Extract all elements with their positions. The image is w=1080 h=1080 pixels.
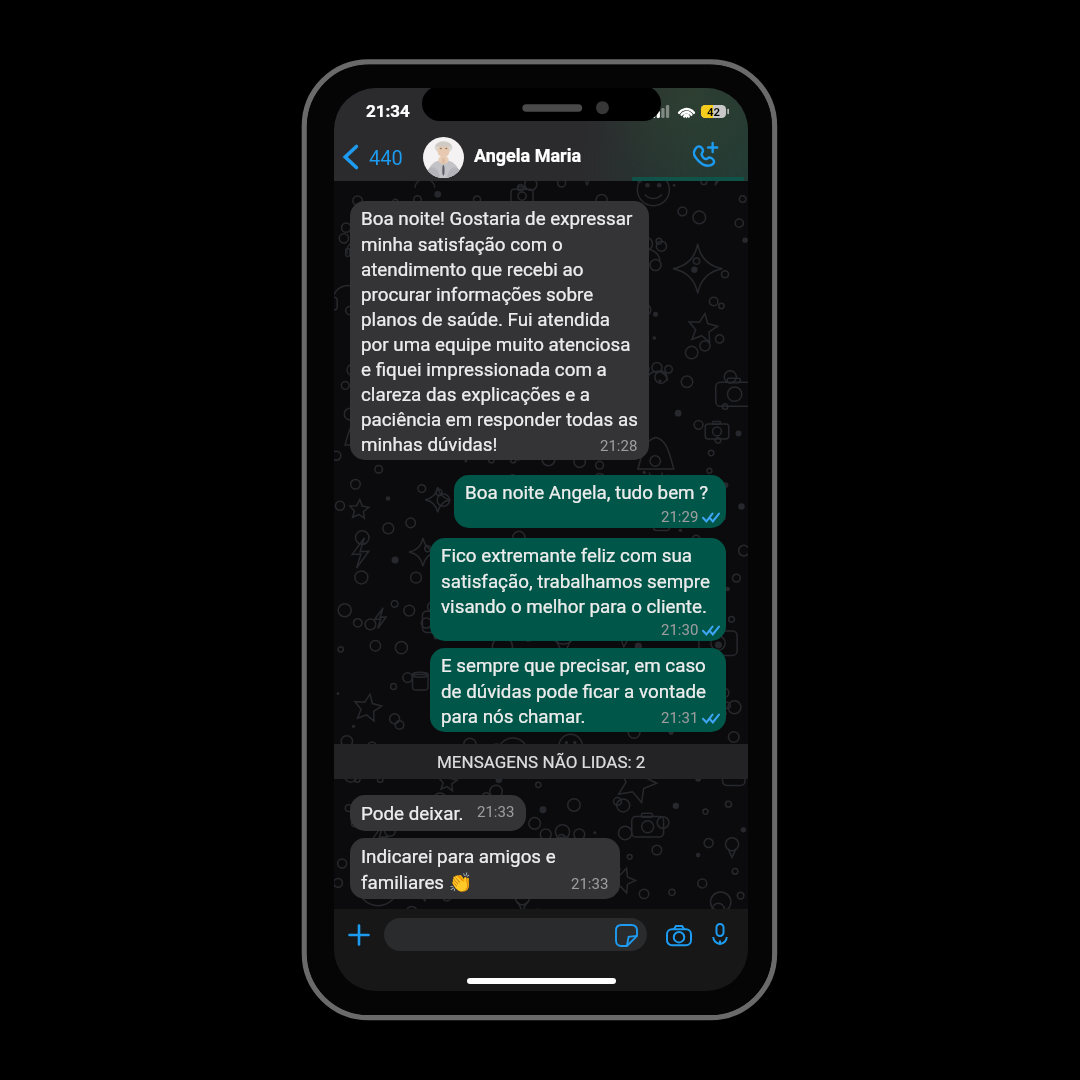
staticText: MENSAGENS NÃO LIDAS: 2 bbox=[437, 752, 646, 772]
button[interactable]: Boa noite! Gostaria de expressar minha s… bbox=[350, 201, 649, 460]
staticText: 21:33 bbox=[571, 875, 609, 893]
staticText: Angela Maria bbox=[474, 145, 582, 166]
button[interactable]: Profile photo bbox=[423, 137, 464, 178]
button[interactable]: E sempre que precisar, em caso de dúvida… bbox=[430, 648, 726, 732]
button[interactable]: New call bbox=[684, 136, 726, 174]
staticText: 21:28 bbox=[600, 437, 638, 455]
staticText: Pode deixar. bbox=[361, 803, 464, 825]
button[interactable]: Camera bbox=[664, 920, 694, 950]
button[interactable]: Attach bbox=[343, 919, 375, 951]
button[interactable]: Stickers bbox=[614, 923, 638, 947]
staticText: 21:30 bbox=[661, 621, 699, 639]
button[interactable]: Voice message bbox=[707, 920, 733, 950]
staticText: 42 bbox=[707, 105, 721, 118]
staticText: 440 bbox=[369, 146, 403, 169]
button[interactable]: Fico extremante feliz com sua satisfação… bbox=[430, 538, 726, 641]
staticText: 21:33 bbox=[477, 803, 515, 821]
staticText: Boa noite! Gostaria de expressar minha s… bbox=[361, 208, 638, 455]
staticText: Indicarei para amigos e familiares 👏 bbox=[361, 846, 609, 893]
staticText: Boa noite Angela, tudo bem ? bbox=[465, 482, 715, 504]
button[interactable]: 440 bbox=[342, 136, 403, 178]
button[interactable]: Pode deixar. bbox=[350, 795, 526, 831]
button[interactable]: Indicarei para amigos e familiares 👏 bbox=[350, 838, 620, 899]
button[interactable]: Stickers bbox=[384, 918, 647, 951]
staticText: 21:29 bbox=[661, 508, 699, 526]
staticText: 21:34 bbox=[366, 101, 410, 121]
staticText: 21:31 bbox=[661, 709, 699, 727]
staticText: Fico extremante feliz com sua satisfação… bbox=[441, 545, 715, 617]
button[interactable]: Boa noite Angela, tudo bem ? bbox=[454, 475, 726, 528]
staticText: E sempre que precisar, em caso de dúvida… bbox=[441, 655, 715, 727]
